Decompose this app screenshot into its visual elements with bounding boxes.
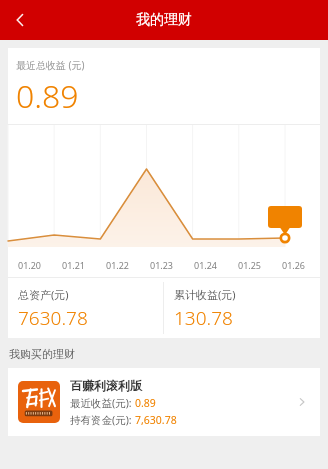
staticText: 7,630.78 — [135, 413, 177, 427]
staticText: 0.89 — [135, 396, 156, 410]
staticText: 01.24 — [194, 259, 218, 271]
staticText: 持有资金(元): — [70, 413, 135, 427]
button[interactable]: Back — [0, 0, 40, 40]
staticText: 最近收益(元): — [70, 396, 135, 410]
staticText: 我的理财 — [136, 11, 192, 29]
staticText: 01.26 — [282, 259, 306, 271]
staticText: 01.22 — [106, 259, 130, 271]
staticText: 01.21 — [62, 259, 86, 271]
staticText: 7630.78 — [18, 305, 88, 331]
staticText: 总资产(元) — [18, 287, 69, 302]
button[interactable]: 百赚利滚利版 — [8, 368, 320, 436]
staticText: 130.78 — [174, 305, 233, 331]
staticText: 我购买的理财 — [9, 347, 75, 361]
staticText: 百赚利滚利版 — [70, 378, 142, 393]
button[interactable]: 总资产(元) — [8, 278, 163, 338]
staticText: 01.25 — [238, 259, 262, 271]
button[interactable]: 累计收益(元) — [164, 278, 320, 338]
staticText: 01.23 — [150, 259, 174, 271]
other: Details — [290, 390, 314, 414]
staticText: 累计收益(元) — [174, 287, 236, 302]
staticText: 最近总收益 (元) — [16, 58, 85, 72]
staticText: 01.20 — [18, 259, 42, 271]
staticText: 0.89 — [16, 74, 79, 118]
